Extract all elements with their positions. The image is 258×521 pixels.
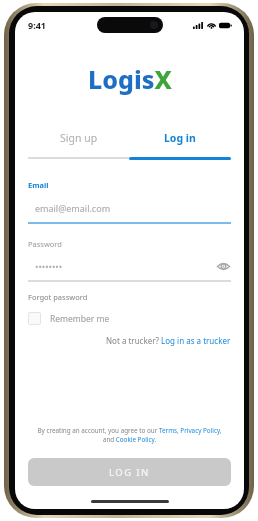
staticText: email@email.com [35,202,231,214]
button[interactable]: email@email.com [28,199,231,224]
button[interactable]: Log in [129,126,231,150]
staticText: Email [28,180,49,190]
staticText: Password [28,239,62,249]
staticText: Log in [164,131,196,145]
staticText: Forgot password [28,292,88,302]
button[interactable]: Remember me [28,312,110,325]
staticText: Remember me [50,313,110,325]
staticText: By creating an account, you agree to our… [33,426,226,444]
staticText: Not a trucker? Log in as a trucker [106,335,231,346]
button[interactable]: •••••••• [28,257,231,282]
staticText: LOG IN [109,466,150,479]
staticText: •••••••• [35,260,215,272]
button[interactable]: Not a trucker? Log in as a trucker [106,335,231,346]
button[interactable]: LOG IN [28,458,231,486]
staticText: 9:41 [28,19,46,31]
button[interactable]: Show password [215,258,231,274]
staticText: LogisX [88,62,172,96]
button[interactable]: Forgot password [28,291,88,303]
button[interactable]: Sign up [28,126,129,150]
staticText: Sign up [60,131,98,145]
